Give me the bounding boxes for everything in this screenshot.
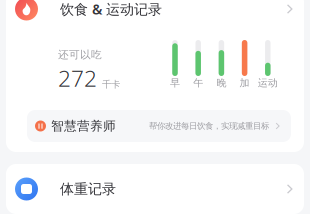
staticText: 运动	[258, 76, 278, 89]
staticText: 智慧营养师	[51, 118, 116, 134]
staticText: 饮食 & 运动记录	[60, 0, 162, 19]
staticText: 千卡	[102, 79, 120, 90]
staticText: 帮你改进每日饮食，实现减重目标	[149, 121, 269, 131]
staticText: 加	[240, 76, 250, 89]
button[interactable]: 饮食 & 运动记录	[6, 0, 304, 23]
staticText: 午	[193, 76, 203, 89]
button[interactable]: 智慧营养师	[27, 110, 291, 142]
staticText: 体重记录	[60, 180, 116, 198]
staticText: 晚	[216, 76, 226, 89]
staticText: 272	[58, 62, 97, 93]
staticText: 还可以吃	[58, 48, 102, 61]
staticText: 早	[170, 76, 180, 89]
button[interactable]: 体重记录	[6, 164, 304, 214]
